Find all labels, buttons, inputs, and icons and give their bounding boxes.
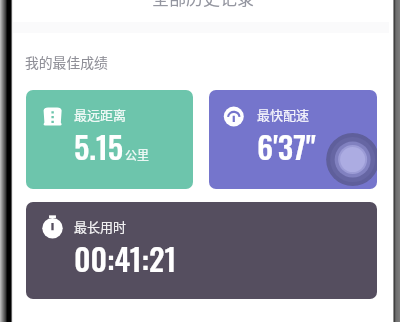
button[interactable]: 最远距离 (26, 90, 193, 189)
staticText: 全部历史记录 (152, 0, 254, 7)
staticText: 最快配速 (257, 105, 310, 124)
staticText: 6'37" (257, 123, 316, 169)
staticText: 公里 (125, 146, 150, 163)
button[interactable]: 最快配速 (209, 90, 377, 189)
button[interactable]: 最长用时 (26, 202, 377, 299)
staticText: 5.15 (74, 123, 124, 169)
staticText: 最长用时 (74, 217, 127, 236)
staticText: 最远距离 (74, 105, 127, 124)
staticText: 00:41:21 (74, 235, 177, 281)
staticText: 我的最佳成绩 (25, 52, 108, 72)
